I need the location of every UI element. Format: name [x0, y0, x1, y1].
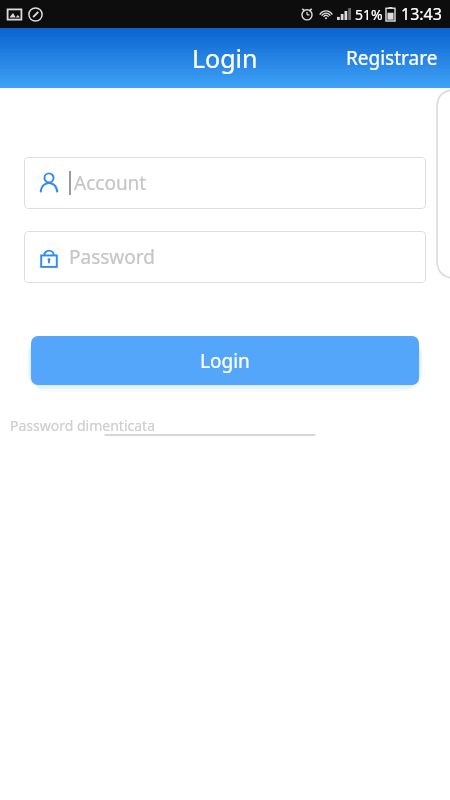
staticText: Password [69, 244, 155, 270]
staticText: Account [74, 170, 147, 196]
button[interactable]: Password [24, 231, 426, 283]
button[interactable]: Account [24, 157, 426, 209]
staticText: Password dimenticata [10, 416, 155, 435]
staticText: Registrare [346, 45, 438, 71]
staticText: Login [200, 348, 250, 374]
button[interactable]: Registrare [334, 35, 450, 81]
staticText: 13:43 [401, 3, 442, 25]
staticText: 51% [355, 5, 383, 24]
button[interactable]: Login [31, 336, 419, 385]
button[interactable]: Password dimenticata [0, 413, 450, 438]
staticText: Login [192, 41, 258, 75]
